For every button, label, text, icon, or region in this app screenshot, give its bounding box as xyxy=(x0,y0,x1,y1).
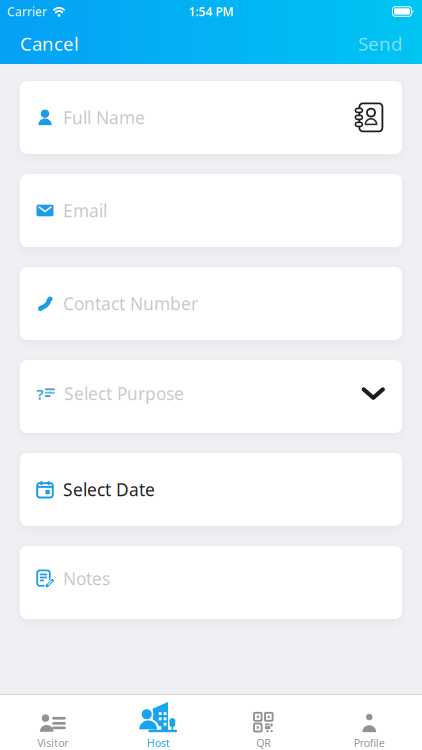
button[interactable]: Cancel xyxy=(20,31,79,56)
staticText: Cancel xyxy=(20,31,79,56)
staticText: Carrier xyxy=(7,3,47,19)
staticText: 1:54 PM xyxy=(188,3,233,19)
button[interactable]: Full Name xyxy=(20,81,402,154)
button[interactable]: Notes xyxy=(20,546,402,619)
button[interactable]: Visitor xyxy=(0,713,105,750)
staticText: Select Date xyxy=(63,478,155,501)
button[interactable]: Pick from contacts xyxy=(354,102,385,133)
staticText: Send xyxy=(358,31,402,56)
staticText: Host xyxy=(147,736,170,750)
staticText: Full Name xyxy=(63,106,145,129)
button[interactable]: Email xyxy=(20,174,402,247)
staticText: Profile xyxy=(354,736,385,750)
staticText: Email xyxy=(63,199,107,222)
button[interactable]: Send xyxy=(358,31,402,56)
staticText: Select Purpose xyxy=(64,382,184,405)
button[interactable]: Host xyxy=(105,713,211,750)
staticText: Visitor xyxy=(37,736,68,750)
button[interactable]: Select Date xyxy=(20,453,402,526)
button[interactable]: Profile xyxy=(316,713,422,750)
button[interactable]: ? xyxy=(20,360,402,433)
button[interactable]: Contact Number xyxy=(20,267,402,340)
button[interactable]: QR xyxy=(211,713,316,750)
staticText: QR xyxy=(256,736,271,750)
staticText: ? xyxy=(36,384,43,404)
staticText: Contact Number xyxy=(63,292,198,315)
staticText: Notes xyxy=(63,567,110,590)
